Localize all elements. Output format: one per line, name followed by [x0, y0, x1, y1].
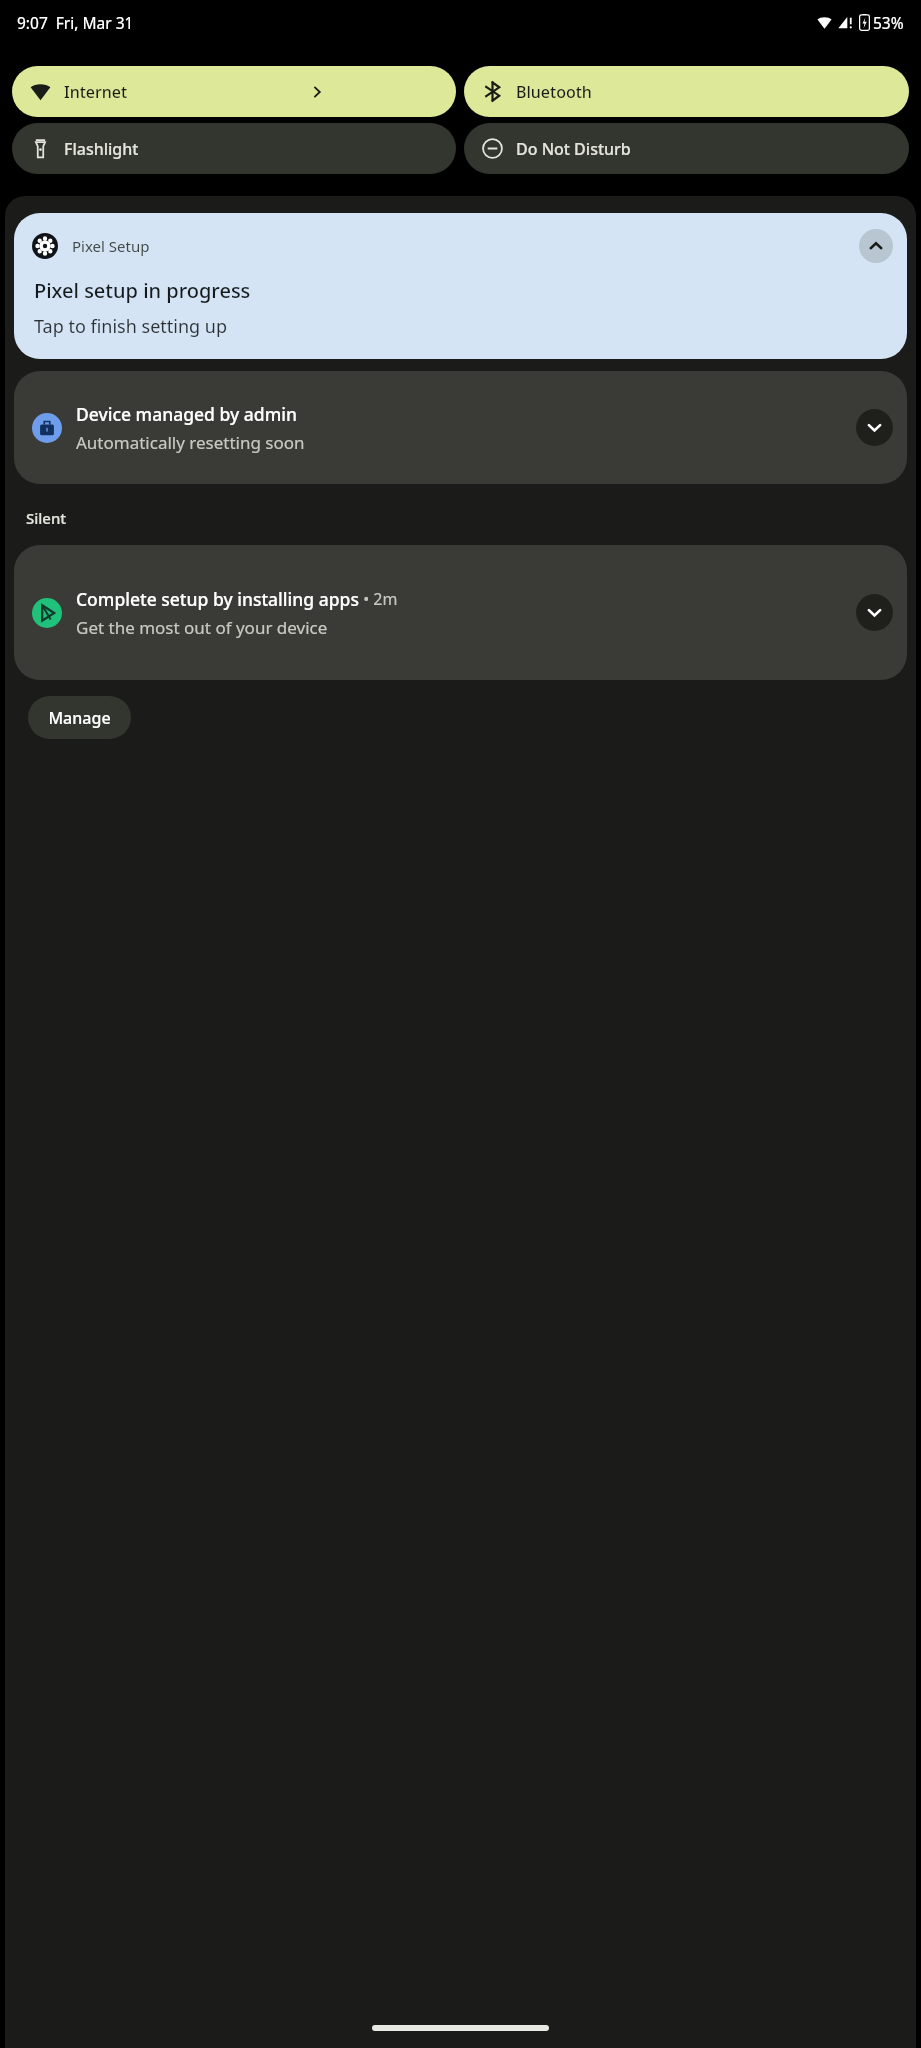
- staticText: • 2m: [359, 588, 398, 610]
- staticText: Bluetooth: [516, 81, 592, 103]
- staticText: Internet: [64, 81, 128, 103]
- staticText: Do Not Disturb: [516, 138, 631, 160]
- button[interactable]: Collapse notification: [859, 229, 893, 263]
- staticText: Pixel setup in progress: [34, 277, 251, 304]
- staticText: Pixel Setup: [72, 236, 150, 256]
- staticText: 9:07 Fri, Mar 31: [17, 12, 134, 33]
- staticText: Automatically resetting soon: [76, 431, 305, 454]
- staticText: Manage: [48, 707, 111, 729]
- button[interactable]: Expand notification: [856, 409, 893, 446]
- staticText: 53%: [873, 12, 904, 33]
- button[interactable]: Do Not Disturb: [464, 123, 909, 174]
- staticText: Complete setup by installing apps: [76, 587, 359, 611]
- staticText: Get the most out of your device: [76, 616, 328, 639]
- button[interactable]: Pixel Setup: [14, 213, 907, 359]
- staticText: Tap to finish setting up: [34, 314, 227, 339]
- button[interactable]: Manage: [28, 696, 131, 739]
- button[interactable]: Internet: [12, 66, 456, 117]
- staticText: Device managed by admin: [76, 402, 297, 426]
- button[interactable]: Expand notification: [856, 594, 893, 631]
- button[interactable]: Device managed by admin: [14, 371, 907, 484]
- button[interactable]: Flashlight: [12, 123, 456, 174]
- button[interactable]: Bluetooth: [464, 66, 909, 117]
- staticText: Flashlight: [64, 138, 139, 160]
- staticText: Silent: [26, 508, 67, 528]
- button[interactable]: Complete setup by installing apps: [14, 545, 907, 680]
